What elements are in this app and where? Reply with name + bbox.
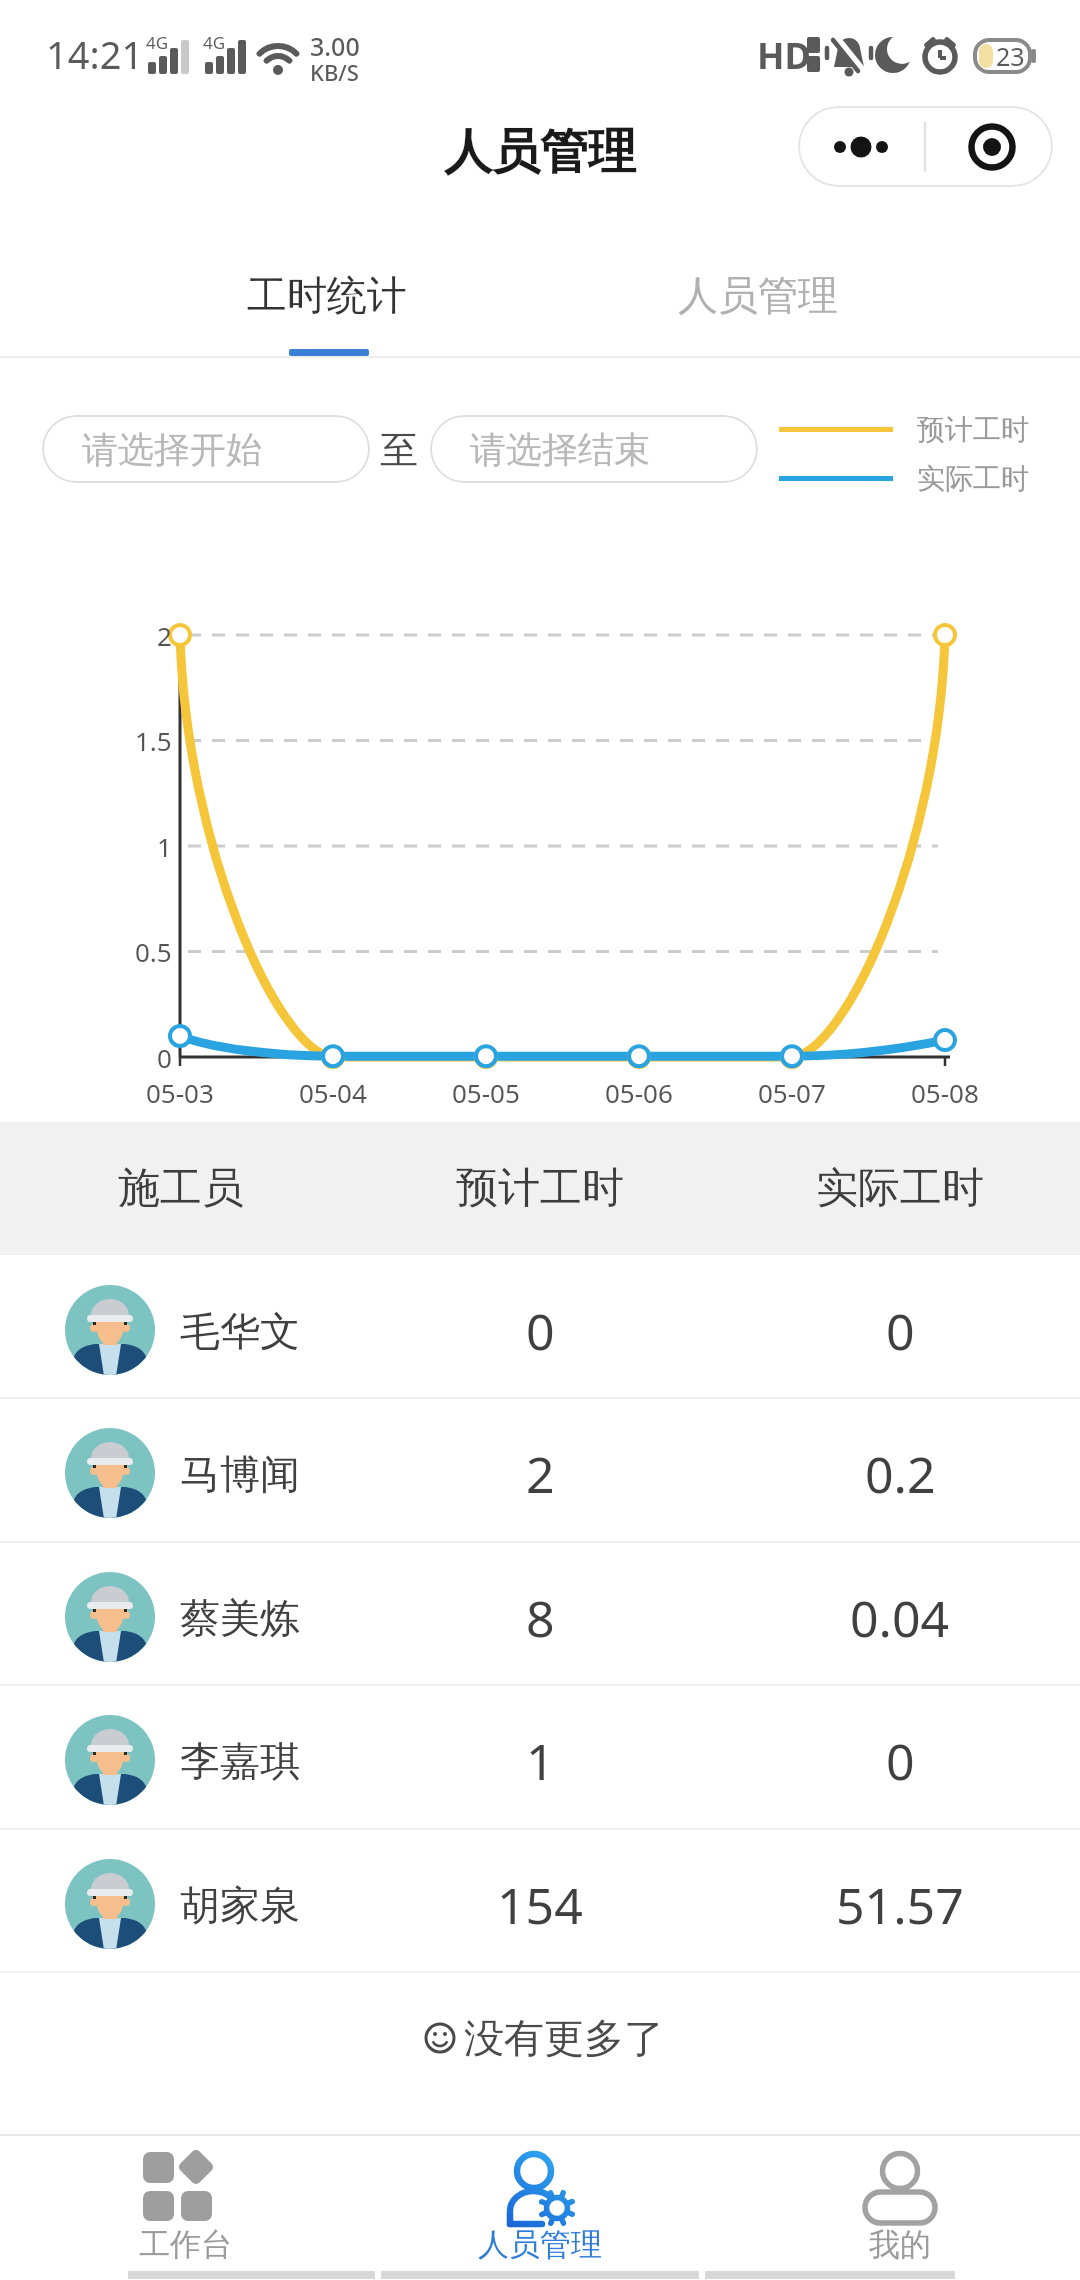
staticText: KB/S	[310, 57, 359, 87]
staticText: 施工员	[118, 1162, 244, 1215]
button[interactable]: 马博闻	[0, 1398, 1080, 1541]
staticText: 05-03	[146, 1075, 214, 1110]
staticText: 23	[996, 39, 1025, 73]
staticText: 51.57	[836, 1871, 964, 1939]
staticText: 0	[526, 1297, 555, 1365]
button[interactable]: 工时统计	[217, 240, 437, 350]
staticText: 预计工时	[456, 1162, 624, 1215]
staticText: 1.5	[135, 723, 172, 758]
staticText: 05-06	[605, 1075, 673, 1110]
staticText: 154	[497, 1871, 583, 1939]
staticText: HD	[757, 31, 811, 80]
button[interactable]: 工作台	[40, 2136, 330, 2276]
staticText: 胡家泉	[180, 1880, 300, 1930]
staticText: 我的	[869, 2225, 931, 2264]
staticText: 0	[886, 1727, 915, 1795]
button[interactable]: 人员管理	[395, 2136, 685, 2276]
staticText: 05-07	[758, 1075, 826, 1110]
staticText: 没有更多了	[464, 2013, 664, 2063]
button[interactable]: 人员管理	[648, 240, 868, 350]
staticText: 4G	[146, 31, 169, 54]
button[interactable]	[798, 106, 1053, 187]
staticText: 05-08	[911, 1075, 979, 1110]
staticText: 人员管理	[478, 2225, 602, 2264]
button[interactable]: 毛华文	[0, 1255, 1080, 1398]
staticText: 2	[157, 618, 172, 653]
button[interactable]: 蔡美炼	[0, 1542, 1080, 1685]
staticText: 0	[886, 1297, 915, 1365]
staticText: 8	[526, 1584, 555, 1652]
button[interactable]: 请选择结束	[430, 415, 758, 483]
staticText: 蔡美炼	[180, 1593, 300, 1643]
staticText: 马博闻	[180, 1449, 300, 1499]
staticText: 0.04	[850, 1584, 950, 1652]
staticText: 0.2	[865, 1440, 936, 1508]
staticText: 毛华文	[180, 1306, 300, 1356]
staticText: 3.00	[310, 29, 360, 63]
staticText: 0	[157, 1040, 172, 1075]
staticText: 人员管理	[444, 122, 636, 182]
staticText: 05-05	[452, 1075, 520, 1110]
button[interactable]: 胡家泉	[0, 1829, 1080, 1972]
staticText: 05-04	[299, 1075, 367, 1110]
staticText: 实际工时	[816, 1162, 984, 1215]
button[interactable]: 请选择开始	[42, 415, 370, 483]
staticText: 14:21	[46, 28, 144, 80]
staticText: 工时统计	[247, 270, 407, 320]
staticText: 预计工时	[917, 412, 1029, 447]
staticText: 李嘉琪	[180, 1736, 300, 1786]
button[interactable]: 李嘉琪	[0, 1685, 1080, 1828]
staticText: 4G	[203, 31, 226, 54]
staticText: 工作台	[139, 2225, 232, 2264]
staticText: 2	[526, 1440, 555, 1508]
staticText: 1	[157, 829, 172, 864]
staticText: 人员管理	[678, 270, 838, 320]
staticText: 至	[380, 426, 418, 474]
staticText: 请选择结束	[470, 427, 650, 472]
staticText: 请选择开始	[82, 427, 262, 472]
staticText: 1	[526, 1727, 555, 1795]
button[interactable]: 我的	[755, 2136, 1045, 2276]
staticText: 实际工时	[917, 461, 1029, 496]
staticText: 0.5	[135, 934, 172, 969]
